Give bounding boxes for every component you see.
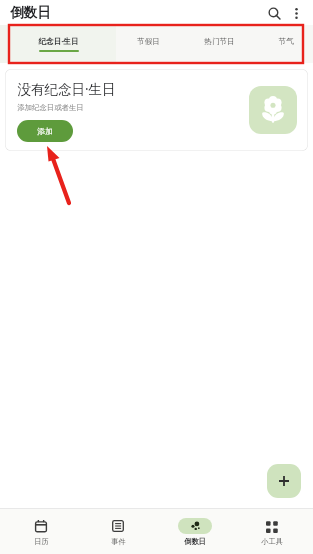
button[interactable]: 纪念日·生日 (0, 25, 116, 63)
button[interactable]: 添加倒数日 (267, 464, 301, 498)
staticText: 事件 (111, 537, 126, 546)
button[interactable]: 节气 (258, 25, 313, 63)
staticText: 纪念日·生日 (38, 36, 79, 46)
staticText: 添加纪念日或者生日 (17, 103, 84, 112)
button[interactable]: 节假日 (116, 25, 180, 63)
button[interactable]: 倒数日 (159, 515, 231, 549)
staticText: 没有纪念日·生日 (17, 80, 116, 98)
button[interactable]: 热门节日 (180, 25, 258, 63)
staticText: 倒数日 (10, 4, 51, 21)
button[interactable]: 更多选项 (285, 2, 307, 24)
button[interactable]: 添加 (17, 120, 73, 142)
staticText: 热门节日 (204, 37, 235, 47)
button[interactable]: 没有纪念日·生日 (5, 69, 308, 151)
staticText: 节假日 (137, 37, 160, 47)
staticText: 小工具 (261, 537, 283, 546)
staticText: 日历 (34, 537, 49, 546)
staticText: 倒数日 (184, 537, 206, 546)
button[interactable]: 搜索 (263, 2, 285, 24)
staticText: 添加 (37, 126, 53, 136)
button[interactable]: 事件 (82, 515, 154, 549)
staticText: 节气 (278, 37, 294, 47)
button[interactable]: 小工具 (236, 515, 308, 549)
button[interactable]: 日历 (5, 515, 77, 549)
